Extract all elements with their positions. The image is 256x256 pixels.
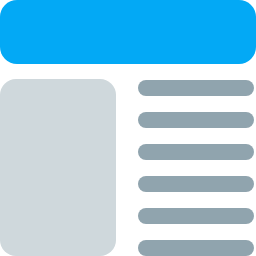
button[interactable]: Text line 3 — [138, 144, 254, 160]
button[interactable]: Text line 6 — [138, 240, 254, 256]
button[interactable]: Text line 2 — [138, 112, 254, 128]
button[interactable]: Image placeholder — [0, 79, 116, 256]
button[interactable]: Header banner — [0, 0, 256, 64]
button[interactable]: Text line 4 — [138, 176, 254, 192]
button[interactable]: Text line 1 — [138, 80, 254, 96]
button[interactable]: Text line 5 — [138, 208, 254, 224]
